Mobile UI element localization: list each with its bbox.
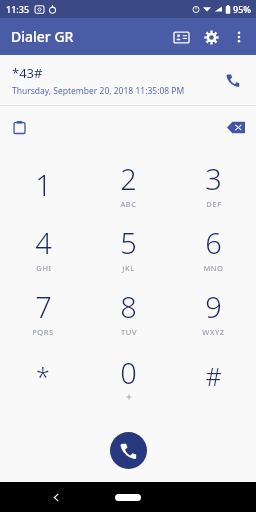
- button[interactable]: Back: [44, 485, 68, 509]
- staticText: 5: [120, 223, 137, 262]
- staticText: 0: [120, 353, 137, 392]
- staticText: 7: [35, 287, 52, 326]
- button[interactable]: 0: [86, 344, 171, 408]
- staticText: TUV: [121, 327, 137, 337]
- staticText: *: [36, 359, 50, 393]
- button[interactable]: 3: [171, 152, 256, 216]
- button[interactable]: Call: [110, 432, 147, 469]
- staticText: GHI: [36, 263, 52, 273]
- button[interactable]: 6: [171, 216, 256, 280]
- staticText: PQRS: [32, 327, 54, 337]
- staticText: ABC: [120, 199, 137, 209]
- staticText: 2: [120, 159, 137, 198]
- staticText: 1: [35, 165, 52, 204]
- button[interactable]: Backspace: [222, 113, 250, 141]
- staticText: #: [205, 359, 222, 393]
- staticText: JKL: [122, 263, 135, 273]
- button[interactable]: Contacts: [166, 22, 196, 52]
- button[interactable]: #: [171, 344, 256, 408]
- button[interactable]: 7: [0, 280, 86, 344]
- button[interactable]: 8: [86, 280, 171, 344]
- button[interactable]: 4: [0, 216, 86, 280]
- staticText: 95%: [233, 3, 251, 15]
- button[interactable]: More options: [226, 24, 252, 50]
- button[interactable]: Call number: [218, 65, 248, 95]
- button[interactable]: *: [0, 344, 86, 408]
- staticText: 8: [120, 287, 137, 326]
- staticText: 3: [205, 159, 222, 198]
- staticText: DEF: [206, 199, 222, 209]
- staticText: WXYZ: [202, 327, 225, 337]
- button[interactable]: Paste from clipboard: [5, 113, 33, 141]
- button[interactable]: 5: [86, 216, 171, 280]
- staticText: 9: [205, 287, 222, 326]
- button[interactable]: Home: [115, 494, 141, 501]
- staticText: MNO: [203, 263, 224, 273]
- button[interactable]: 9: [171, 280, 256, 344]
- staticText: *43#: [12, 64, 43, 82]
- staticText: Thursday, September 20, 2018 11:35:08 PM: [12, 85, 185, 97]
- button[interactable]: Settings: [196, 22, 226, 52]
- button[interactable]: 2: [86, 152, 171, 216]
- staticText: 4: [35, 223, 52, 262]
- staticText: Dialer GR: [11, 27, 74, 46]
- staticText: 11:35: [6, 3, 30, 15]
- staticText: 6: [205, 223, 222, 262]
- button[interactable]: 1: [0, 152, 86, 216]
